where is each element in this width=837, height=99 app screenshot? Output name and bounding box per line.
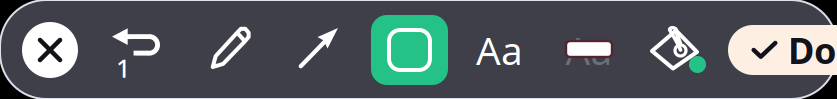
staticText: Aa [565,24,612,76]
button[interactable]: Highlight [559,28,619,72]
button[interactable]: Shape [371,15,448,85]
button[interactable]: Draw [212,28,249,67]
staticText: Aa [476,24,523,76]
button[interactable]: Text [471,28,527,72]
button[interactable]: Undo [112,24,164,70]
staticText: Done [788,26,837,74]
button[interactable]: Arrow [300,28,338,67]
staticText: 1 [116,51,130,85]
button[interactable]: Fill colour [650,26,706,74]
button[interactable]: Done [728,25,837,75]
button[interactable]: Close [22,22,78,78]
